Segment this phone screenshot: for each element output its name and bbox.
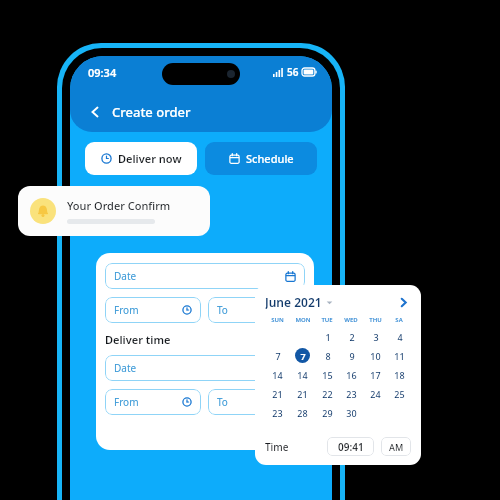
staticText: WED [344,316,358,324]
button[interactable]: From [105,389,201,415]
staticText: 23 [346,388,357,400]
button[interactable]: Date [105,263,305,289]
staticText: 11 [394,350,405,362]
button[interactable]: 2 [344,329,359,344]
button[interactable]: 11 [392,348,407,363]
button[interactable]: June 2021 [265,294,333,310]
staticText: Schedule [246,151,294,166]
button[interactable]: 7 [270,348,285,363]
staticText: 7 [275,350,281,362]
button[interactable]: Back [84,100,195,124]
button[interactable]: 15 [320,367,335,382]
staticText: From [114,303,139,317]
button[interactable]: 25 [392,386,407,401]
staticText: 30 [346,407,357,419]
staticText: 14 [297,369,308,381]
staticText: TUE [321,316,333,324]
staticText: 23 [272,407,283,419]
button[interactable]: Next month [395,294,411,310]
staticText: Deliver time [105,332,171,347]
staticText: 21 [297,388,308,400]
button[interactable]: 30 [344,405,359,420]
button[interactable]: 21 [270,386,285,401]
staticText: Time [265,440,289,454]
staticText: SUN [271,316,284,324]
button[interactable]: 3 [368,329,383,344]
staticText: Date [114,361,137,375]
staticText: Deliver now [118,151,182,166]
staticText: 15 [322,369,333,381]
staticText: THU [369,316,382,324]
staticText: 8 [325,350,331,362]
staticText: 14 [272,369,283,381]
staticText: 17 [370,369,381,381]
button[interactable]: 1 [320,329,335,344]
button[interactable]: 23 [344,386,359,401]
button[interactable]: From [105,297,201,323]
staticText: 2 [349,331,355,343]
staticText: 29 [322,407,333,419]
staticText: 3 [373,331,379,343]
button[interactable]: Schedule [205,142,317,175]
button[interactable]: 9 [344,348,359,363]
button[interactable]: 10 [368,348,383,363]
button[interactable]: 4 [392,329,407,344]
staticText: 9 [349,350,355,362]
button[interactable]: Date [105,355,305,381]
button[interactable]: 09:41 [327,437,374,456]
staticText: 10 [370,350,381,362]
staticText: 28 [297,407,308,419]
other: Back [88,105,102,119]
staticText: 09:41 [338,440,364,454]
staticText: June 2021 [265,294,322,310]
staticText: 16 [346,369,357,381]
button[interactable]: 22 [320,386,335,401]
staticText: 22 [322,388,333,400]
staticText: 18 [394,369,405,381]
staticText: 4 [397,331,403,343]
staticText: 7 [300,350,306,362]
button[interactable]: 17 [368,367,383,382]
button[interactable]: 18 [392,367,407,382]
staticText: 25 [394,388,405,400]
staticText: SA [395,316,403,324]
button[interactable]: 8 [320,348,335,363]
button[interactable]: To [208,389,304,415]
staticText: To [217,303,228,317]
staticText: 21 [272,388,283,400]
button[interactable]: AM [381,437,411,456]
staticText: From [114,395,139,409]
button[interactable]: 16 [344,367,359,382]
button[interactable]: To [208,297,304,323]
button[interactable]: 28 [295,405,310,420]
button[interactable]: 21 [295,386,310,401]
button[interactable]: Your Order Confirm [18,186,210,236]
button[interactable]: 23 [270,405,285,420]
staticText: MON [295,316,311,324]
staticText: To [217,395,228,409]
button[interactable]: 24 [368,386,383,401]
staticText: 24 [370,388,381,400]
staticText: 1 [325,331,331,343]
staticText: AM [389,441,404,453]
button[interactable]: 29 [320,405,335,420]
staticText: Date [114,269,137,283]
button[interactable]: Deliver now [85,142,197,175]
button[interactable]: 14 [295,367,310,382]
button[interactable]: 7 [295,348,310,363]
staticText: 56 [287,65,299,79]
button[interactable]: 14 [270,367,285,382]
staticText: Your Order Confirm [67,198,171,213]
staticText: Create order [112,103,191,121]
staticText: 09:34 [88,65,117,80]
